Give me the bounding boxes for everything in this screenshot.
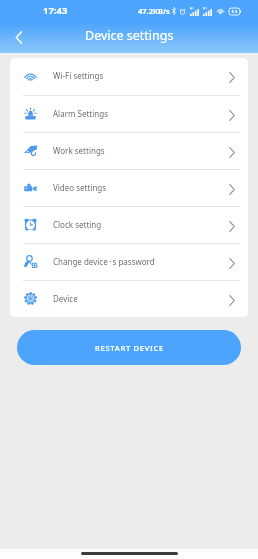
button[interactable]: Wi-Fi settings [10, 58, 248, 95]
button[interactable]: Device [10, 280, 248, 317]
button[interactable]: Alarm Settings [10, 95, 248, 132]
staticText: Wi-Fi settings [53, 70, 104, 81]
staticText: 17:43 [43, 4, 68, 17]
button[interactable]: Clock setting [10, 206, 248, 243]
button[interactable]: Change device · s password [10, 243, 248, 280]
staticText: Clock setting [53, 219, 102, 230]
staticText: Alarm Settings [53, 108, 108, 119]
button[interactable]: Work settings [10, 132, 248, 169]
staticText: Device settings [85, 27, 174, 44]
staticText: Video settings [53, 182, 107, 193]
staticText: Change device · s password [53, 256, 155, 267]
button[interactable]: Back [9, 27, 29, 47]
staticText: Work settings [53, 145, 105, 156]
button[interactable]: Video settings [10, 169, 248, 206]
staticText: Device [53, 293, 78, 304]
staticText: RESTART DEVICE [95, 343, 164, 353]
staticText: 47.2KB/s [138, 6, 170, 16]
button[interactable]: RESTART DEVICE [17, 330, 241, 365]
